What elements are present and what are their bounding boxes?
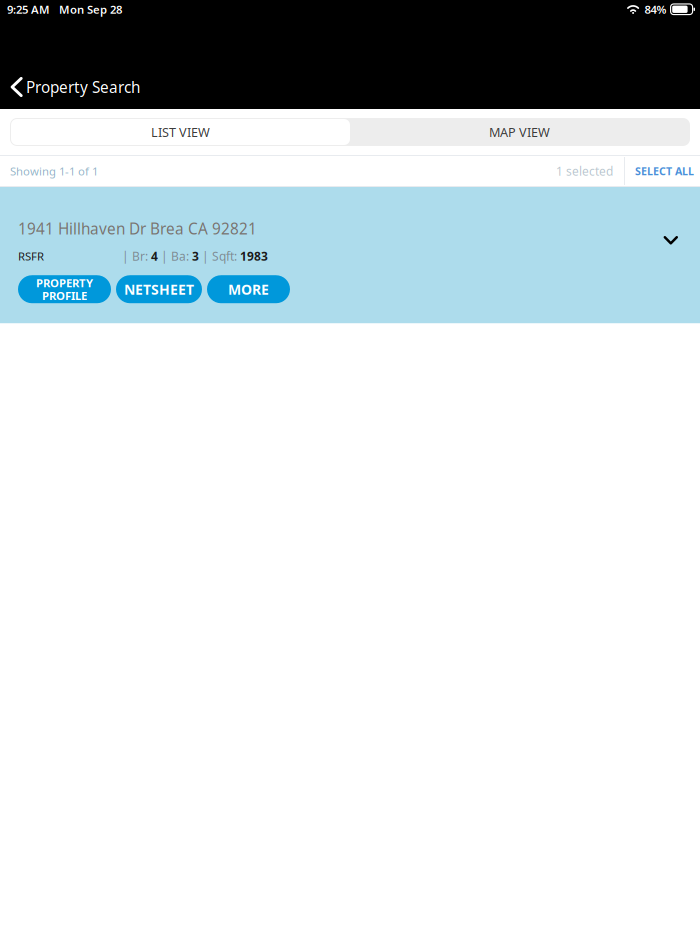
- staticText: 1983: [240, 248, 268, 264]
- staticText: PROFILE: [42, 288, 87, 303]
- staticText: LIST VIEW: [151, 123, 210, 141]
- staticText: MORE: [228, 280, 269, 299]
- button[interactable]: MORE: [207, 275, 290, 303]
- staticText: 3: [192, 248, 199, 264]
- staticText: Mon Sep 28: [59, 2, 122, 17]
- staticText: 1941 Hillhaven Dr Brea CA 92821: [18, 218, 257, 239]
- staticText: NETSHEET: [124, 280, 194, 299]
- staticText: | Ba:: [158, 248, 192, 264]
- staticText: 84%: [645, 2, 667, 17]
- staticText: 4: [151, 248, 158, 264]
- button[interactable]: MAP VIEW: [350, 119, 689, 145]
- staticText: MAP VIEW: [489, 123, 550, 141]
- staticText: | Sqft:: [199, 248, 240, 264]
- button[interactable]: PROPERTY: [18, 275, 111, 303]
- button[interactable]: SELECT ALL: [625, 156, 700, 186]
- button[interactable]: Expand row: [651, 218, 691, 245]
- button[interactable]: NETSHEET: [116, 275, 202, 303]
- staticText: SELECT ALL: [635, 164, 694, 178]
- staticText: 1 selected: [556, 163, 613, 179]
- staticText: RSFR: [18, 248, 44, 264]
- staticText: | Br:: [122, 248, 151, 264]
- staticText: PROPERTY: [36, 275, 93, 290]
- button[interactable]: LIST VIEW: [11, 119, 350, 145]
- button[interactable]: Property Search: [0, 65, 152, 109]
- staticText: 9:25 AM: [7, 2, 50, 17]
- staticText: Property Search: [26, 77, 140, 97]
- staticText: Showing 1-1 of 1: [10, 163, 98, 179]
